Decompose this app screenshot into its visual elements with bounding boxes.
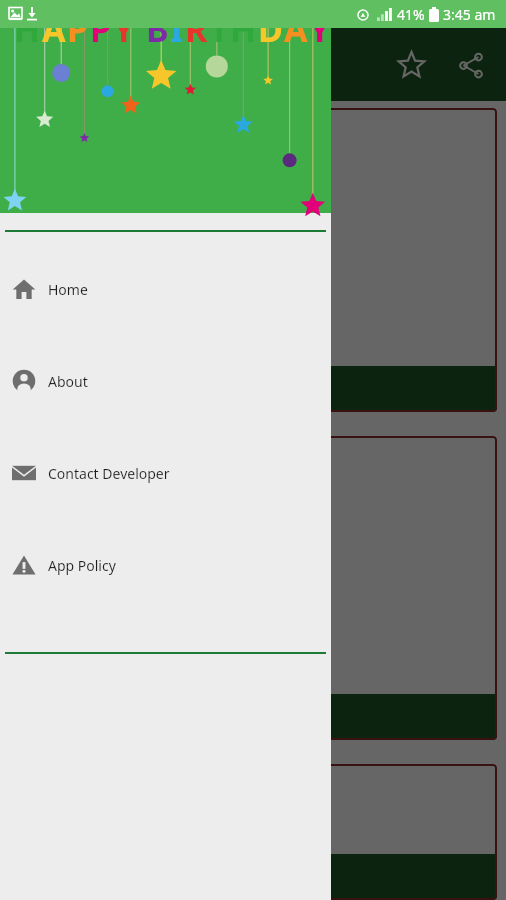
staticText: Contact Developer — [48, 464, 170, 483]
staticText: About — [48, 372, 88, 391]
staticText: A — [42, 6, 66, 52]
staticText: I — [170, 6, 184, 52]
button[interactable]: App Policy — [0, 548, 331, 582]
staticText: P — [90, 6, 112, 52]
staticText: Copy — [53, 379, 89, 399]
button[interactable]: Share — [448, 42, 494, 88]
staticText: R — [185, 6, 208, 52]
staticText: B — [146, 6, 169, 52]
button[interactable]: Contact Developer — [0, 456, 331, 490]
staticText: जन्मदिन की हार्दिक शुभकामनाएं होला — [23, 554, 253, 577]
staticText: Y — [309, 6, 331, 52]
staticText: H — [14, 6, 41, 52]
staticText: H — [230, 6, 257, 52]
staticText: P — [67, 6, 89, 52]
staticText: Home — [48, 280, 88, 299]
button[interactable]: About — [0, 364, 331, 398]
staticText: App Policy — [48, 556, 116, 575]
staticText: Y — [113, 6, 135, 52]
staticText: D — [258, 6, 283, 52]
staticText: A — [284, 6, 308, 52]
button[interactable]: Favorite — [388, 42, 434, 88]
staticText: T — [209, 6, 229, 52]
button[interactable]: जन्मदिन की हार्दिक शुभकामनाएं होला — [9, 436, 497, 740]
staticText: 41% — [397, 5, 425, 24]
staticText — [136, 6, 145, 52]
button[interactable]: Home — [0, 272, 331, 306]
staticText: 3:45 am — [443, 5, 496, 24]
button[interactable]: Copy — [9, 108, 497, 412]
button[interactable]: 🎂 — [9, 764, 497, 900]
button[interactable]: Copy — [17, 370, 101, 408]
